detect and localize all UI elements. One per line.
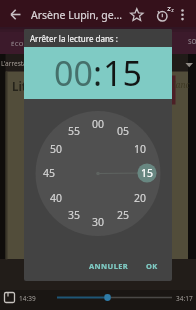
staticText: 34:17 (176, 294, 193, 303)
staticText: 05 (117, 124, 130, 138)
button[interactable] (126, 4, 148, 26)
staticText: ÉCOUTE (11, 40, 37, 48)
button[interactable]: 15 (103, 50, 142, 96)
staticText: 50 (50, 142, 63, 156)
button[interactable] (98, 27, 196, 54)
button[interactable] (0, 27, 98, 54)
staticText: lanc (173, 79, 190, 91)
staticText: ANNULER (89, 261, 129, 271)
staticText: 35 (68, 208, 81, 222)
button[interactable]: 15 (136, 166, 158, 180)
button[interactable]: 05 (112, 124, 134, 138)
staticText: L'arrestation d'Arsène Lupin (1, 59, 86, 68)
button[interactable] (1, 289, 18, 307)
button[interactable] (152, 4, 174, 26)
button[interactable]: 00 (54, 50, 93, 96)
staticText: Lit (12, 79, 27, 95)
staticText: Arrêter la lecture dans : (30, 33, 118, 44)
button[interactable]: ANNULER (87, 256, 131, 275)
button[interactable]: 55 (63, 124, 85, 138)
staticText: SO (188, 37, 196, 46)
staticText: 00 (92, 117, 105, 131)
button[interactable]: 10 (129, 142, 151, 156)
staticText: 55 (68, 124, 81, 138)
button[interactable]: 35 (63, 208, 85, 222)
button[interactable]: 45 (38, 166, 60, 180)
staticText: 25 (117, 208, 130, 222)
button[interactable]: 20 (129, 191, 151, 205)
staticText: 10 (134, 142, 147, 156)
staticText: : (93, 50, 103, 96)
staticText: 20 (134, 191, 147, 205)
button[interactable]: OK (139, 256, 165, 275)
button[interactable] (48, 291, 181, 305)
button[interactable] (4, 4, 26, 24)
button[interactable]: 40 (45, 191, 67, 205)
staticText: 14:39 (19, 294, 36, 303)
staticText: 45 (43, 166, 56, 180)
staticText: 15 (141, 166, 154, 180)
button[interactable]: 30 (87, 215, 109, 229)
staticText: OK (146, 261, 158, 271)
button[interactable]: 25 (112, 208, 134, 222)
button[interactable]: 50 (45, 142, 67, 156)
button[interactable] (174, 4, 192, 26)
staticText: Arsène Lupin, ge... (31, 8, 123, 22)
staticText: 30 (92, 215, 105, 229)
staticText: 40 (50, 191, 63, 205)
button[interactable]: 00 (87, 117, 109, 131)
